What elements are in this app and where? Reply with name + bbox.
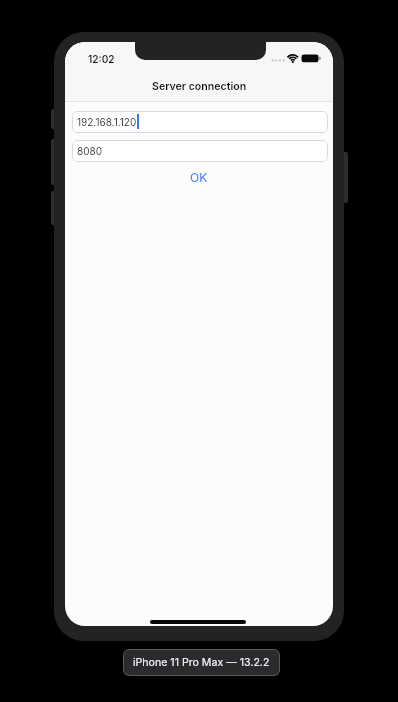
staticText: 192.168.1.120 [77, 116, 137, 128]
staticText: 12:02 [88, 53, 115, 65]
button[interactable]: 192.168.1.120 [72, 111, 328, 133]
button[interactable]: 8080 [72, 140, 328, 162]
button[interactable]: OK [169, 166, 229, 188]
staticText: iPhone 11 Pro Max — 13.2.2 [133, 656, 270, 669]
staticText: OK [190, 170, 208, 185]
staticText: 8080 [77, 145, 102, 157]
staticText: Server connection [152, 80, 247, 93]
